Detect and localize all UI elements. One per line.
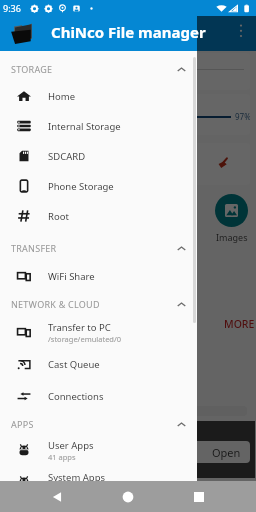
button[interactable]: SDCARD xyxy=(0,141,197,171)
staticText: 41 apps xyxy=(48,452,76,462)
button[interactable]: MORE xyxy=(218,310,256,338)
button[interactable]: WiFi Share xyxy=(0,261,197,291)
button[interactable]: Cast Queue xyxy=(0,349,197,379)
button[interactable]: NETWORK & CLOUD xyxy=(0,290,197,318)
button[interactable]: APPS xyxy=(0,410,197,438)
staticText: System Apps xyxy=(48,471,106,484)
button[interactable]: Open xyxy=(8,441,250,463)
staticText: 102 apps xyxy=(48,484,80,494)
staticText: TRANSFER xyxy=(11,242,57,254)
staticText: MORE xyxy=(224,317,255,331)
staticText: NETWORK & CLOUD xyxy=(11,298,100,310)
button[interactable]: Root xyxy=(0,201,197,231)
button[interactable]: Phone Storage xyxy=(0,171,197,201)
staticText: Transfer to PC xyxy=(48,321,111,334)
staticText: Home xyxy=(48,90,76,103)
staticText: SDCARD xyxy=(48,150,86,163)
staticText: STORAGE xyxy=(11,63,53,75)
staticText: 9:36 xyxy=(3,2,21,14)
staticText: Root xyxy=(48,210,69,223)
button[interactable] xyxy=(17,194,50,227)
staticText: Phone Storage xyxy=(48,180,114,193)
staticText: Connections xyxy=(48,390,104,403)
staticText: 97% xyxy=(235,111,250,122)
staticText: Images xyxy=(216,231,248,243)
button[interactable]: Recent apps xyxy=(185,483,213,511)
button[interactable]: System Apps xyxy=(0,467,197,497)
button[interactable] xyxy=(215,194,248,227)
button[interactable]: Connections xyxy=(0,381,197,411)
staticText: Internal Storage xyxy=(48,120,121,133)
staticText: ChiNco File manager xyxy=(51,22,206,42)
button[interactable]: More options xyxy=(231,20,251,40)
button[interactable]: Home xyxy=(114,483,142,511)
button[interactable]: Internal Storage xyxy=(0,111,197,141)
button[interactable]: Home xyxy=(0,81,197,111)
button[interactable]: TRANSFER xyxy=(0,234,197,262)
button[interactable]: Transfer to PC xyxy=(0,317,197,347)
button[interactable]: User Apps xyxy=(0,435,197,465)
button[interactable]: Back xyxy=(43,483,71,511)
staticText: Cast Queue xyxy=(48,358,100,371)
staticText: /storage/emulated/0 xyxy=(48,334,122,344)
staticText: User Apps xyxy=(48,439,94,452)
staticText: WiFi Share xyxy=(48,270,95,283)
staticText: Open xyxy=(212,445,241,460)
staticText: APPS xyxy=(11,418,34,430)
button[interactable]: STORAGE xyxy=(0,55,197,83)
